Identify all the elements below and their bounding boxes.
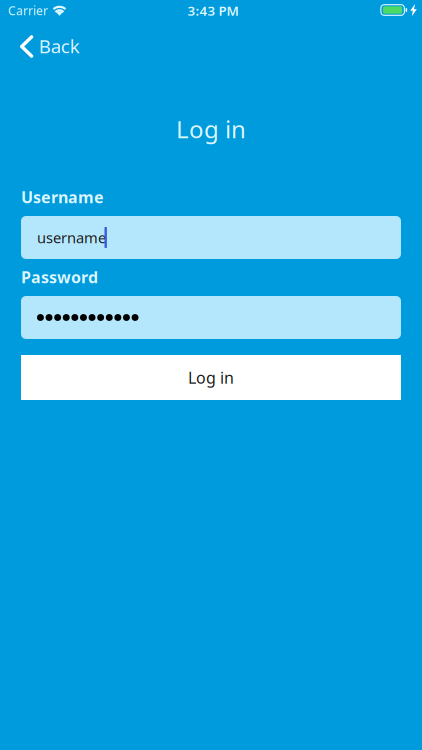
staticText: username <box>37 228 106 247</box>
button[interactable]: username <box>21 216 401 259</box>
staticText: Username <box>21 186 104 208</box>
staticText: Carrier <box>8 2 48 18</box>
staticText: Back <box>39 34 80 58</box>
button[interactable] <box>21 296 401 339</box>
staticText: Password <box>21 266 98 288</box>
staticText: Log in <box>188 367 234 388</box>
button[interactable]: Log in <box>21 355 401 400</box>
button[interactable]: Back <box>0 20 94 72</box>
staticText: Log in <box>176 113 246 145</box>
staticText: 3:43 PM <box>187 2 238 19</box>
